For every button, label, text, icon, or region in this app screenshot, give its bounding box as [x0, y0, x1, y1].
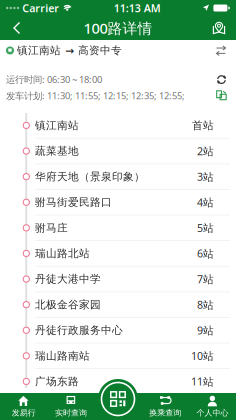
staticText: 瑞山路北站	[35, 247, 90, 260]
staticText: 运行时间: 06:30 ~ 18:00	[6, 73, 102, 85]
staticText: 发车计划: 11:30; 11:55; 12:15; 12:35; 12:55;	[6, 89, 185, 102]
button[interactable]: 驸马庄	[0, 215, 236, 241]
staticText: 8站	[197, 298, 214, 312]
staticText: 100路详情	[83, 18, 152, 38]
staticText: 镇江南站 → 高资中专	[17, 44, 122, 57]
staticText: 10站	[191, 349, 214, 363]
staticText: 发易行	[12, 408, 36, 418]
staticText: Carrier	[22, 1, 59, 15]
staticText: 9站	[197, 323, 214, 337]
button[interactable]: 广场东路	[0, 369, 236, 395]
staticText: 个人中心	[196, 408, 228, 418]
staticText: 4站	[197, 195, 214, 209]
staticText: 华府天地（景泉印象）	[35, 170, 145, 183]
button[interactable]: Scan QR code	[98, 379, 138, 419]
button[interactable]: 蔬菜基地	[0, 139, 236, 164]
button[interactable]: 换乘查询	[141, 393, 189, 420]
staticText: 蔬菜基地	[35, 144, 79, 158]
staticText: 丹徒行政服务中心	[35, 324, 123, 337]
button[interactable]: 驸马街爱民路口	[0, 190, 236, 215]
button[interactable]: 个人中心	[189, 393, 236, 420]
staticText: 7站	[197, 272, 214, 286]
staticText: 镇江南站	[35, 119, 79, 132]
staticText: 丹徒大港中学	[35, 272, 101, 286]
staticText: 换乘查询	[149, 408, 181, 418]
staticText: 北极金谷家园	[35, 298, 101, 311]
button[interactable]: Refresh	[216, 74, 227, 85]
staticText: 驸马庄	[35, 221, 68, 234]
button[interactable]: 丹徒大港中学	[0, 267, 236, 292]
button[interactable]: Back	[0, 16, 34, 40]
button[interactable]: Reverse direction	[216, 45, 226, 56]
button[interactable]: 丹徒行政服务中心	[0, 318, 236, 343]
button[interactable]: 华府天地（景泉印象）	[0, 164, 236, 190]
button[interactable]: 发易行	[0, 393, 47, 420]
staticText: 首站	[192, 119, 214, 132]
staticText: 6站	[197, 246, 214, 261]
button[interactable]: 瑞山路北站	[0, 241, 236, 267]
button[interactable]: 北极金谷家园	[0, 292, 236, 318]
staticText: 3站	[197, 170, 214, 184]
staticText: 2站	[197, 144, 214, 158]
button[interactable]: Copy schedule	[216, 90, 227, 101]
staticText: 瑞山路南站	[35, 349, 90, 362]
staticText: 实时查询	[55, 408, 87, 418]
button[interactable]: 瑞山路南站	[0, 343, 236, 369]
button[interactable]: Map	[202, 16, 236, 40]
button[interactable]: 实时查询	[47, 393, 94, 420]
staticText: 5站	[197, 221, 214, 235]
staticText: 11:13 AM	[114, 1, 161, 15]
staticText: 驸马街爱民路口	[35, 196, 112, 209]
staticText: 广场东路	[35, 375, 79, 388]
button[interactable]: 镇江南站	[0, 113, 236, 139]
staticText: 11站	[191, 374, 214, 389]
